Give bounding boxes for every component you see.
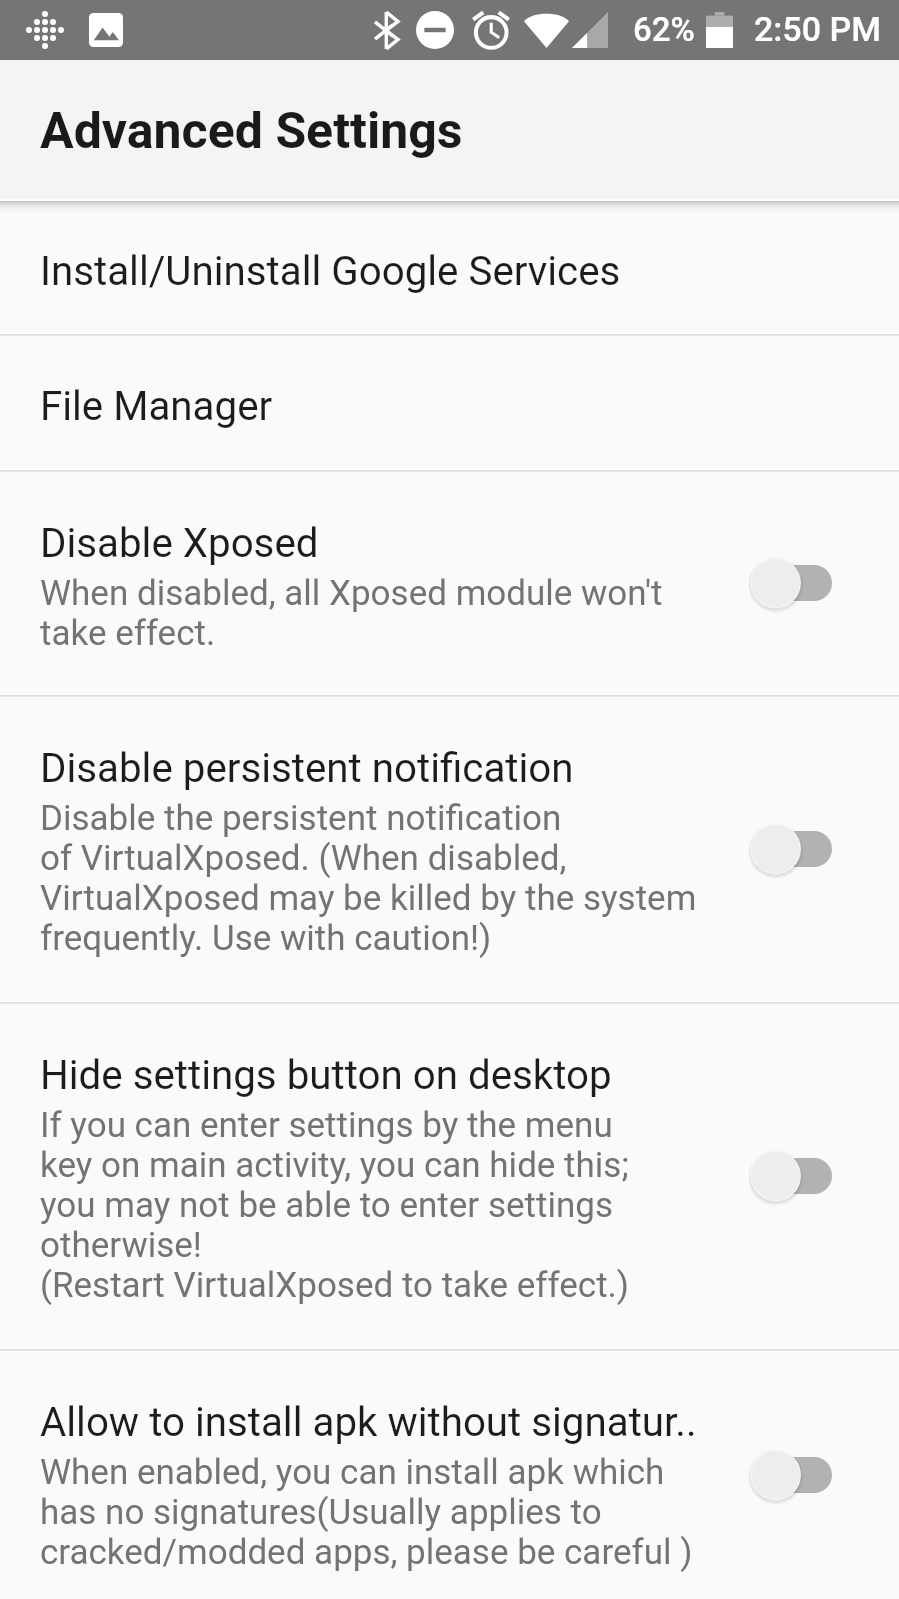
staticText: When enabled, you can install apk which … xyxy=(40,1452,693,1572)
button[interactable]: Toggle setting xyxy=(751,821,832,877)
button[interactable]: Toggle setting xyxy=(751,555,832,611)
button[interactable]: Hide settings button on desktop xyxy=(0,1004,899,1348)
staticText: Install/Uninstall Google Services xyxy=(40,248,621,295)
staticText: File Manager xyxy=(40,383,273,430)
staticText: When disabled, all Xposed module won't t… xyxy=(40,573,663,653)
staticText: Allow to install apk without signatur.. xyxy=(40,1399,697,1446)
staticText: Hide settings button on desktop xyxy=(40,1052,612,1099)
button[interactable]: File Manager xyxy=(0,336,899,469)
button[interactable]: Toggle setting xyxy=(751,1148,832,1204)
staticText: Disable Xposed xyxy=(40,520,319,567)
staticText: Disable the persistent notification of V… xyxy=(40,798,697,958)
button[interactable]: Disable persistent notification xyxy=(0,697,899,1001)
staticText: 2:50 PM xyxy=(754,9,881,49)
button[interactable]: Disable Xposed xyxy=(0,472,899,694)
button[interactable]: Toggle setting xyxy=(751,1447,832,1503)
button[interactable]: Allow to install apk without signatur.. xyxy=(0,1351,899,1599)
staticText: 62% xyxy=(633,10,695,49)
staticText: If you can enter settings by the menu ke… xyxy=(40,1105,630,1305)
staticText: Advanced Settings xyxy=(40,102,463,161)
staticText: Disable persistent notification xyxy=(40,745,574,792)
button[interactable]: Install/Uninstall Google Services xyxy=(0,201,899,333)
